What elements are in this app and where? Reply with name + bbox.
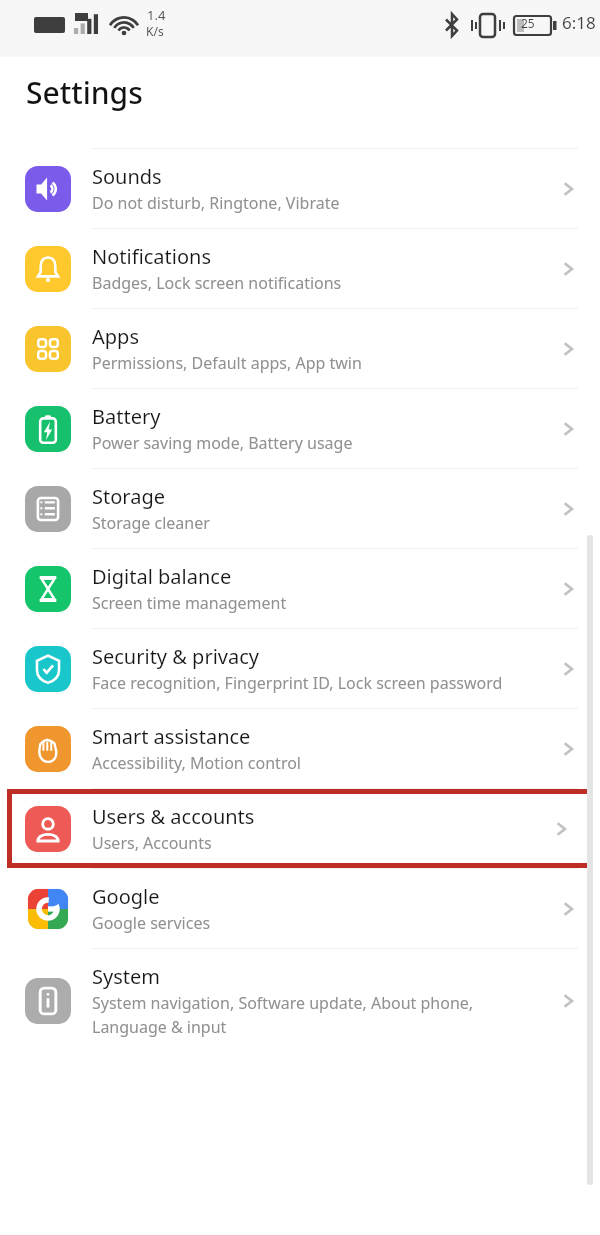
button[interactable]: Notifications: [0, 229, 600, 308]
button[interactable]: Apps: [0, 309, 600, 388]
button[interactable]: Sounds: [0, 149, 600, 228]
staticText: Apps: [92, 323, 139, 350]
staticText: Settings: [26, 72, 143, 113]
button[interactable]: Storage: [0, 469, 600, 548]
other: Open Digital balance: [556, 577, 580, 601]
other: Open Smart assistance: [556, 737, 580, 761]
other: Open Notifications: [556, 257, 580, 281]
staticText: Screen time management: [92, 592, 287, 614]
other: Open Sounds: [556, 177, 580, 201]
other: Open Google: [556, 897, 580, 921]
staticText: Power saving mode, Battery usage: [92, 432, 353, 454]
staticText: Notifications: [92, 243, 211, 270]
button[interactable]: System: [0, 949, 600, 1052]
staticText: Badges, Lock screen notifications: [92, 272, 342, 294]
other: Open Users & accounts: [549, 817, 573, 841]
other: Open System: [556, 989, 580, 1013]
button[interactable]: Digital balance: [0, 549, 600, 628]
staticText: 6:18: [562, 11, 596, 34]
staticText: Security & privacy: [92, 643, 259, 670]
staticText: Do not disturb, Ringtone, Vibrate: [92, 192, 340, 214]
button[interactable]: Users & accounts: [7, 789, 593, 868]
staticText: 1.4: [147, 6, 166, 24]
other: Open Storage: [556, 497, 580, 521]
staticText: Digital balance: [92, 563, 232, 590]
staticText: 25: [521, 15, 535, 31]
staticText: Permissions, Default apps, App twin: [92, 352, 362, 374]
staticText: Google services: [92, 912, 211, 934]
staticText: Storage: [92, 483, 165, 510]
button[interactable]: Battery: [0, 389, 600, 468]
button[interactable]: Google: [0, 869, 600, 948]
button[interactable]: Smart assistance: [0, 709, 600, 788]
button[interactable]: Security & privacy: [0, 629, 600, 708]
staticText: Accessibility, Motion control: [92, 752, 301, 774]
staticText: Storage cleaner: [92, 512, 210, 534]
staticText: Face recognition, Fingerprint ID, Lock s…: [92, 672, 503, 694]
other: Open Apps: [556, 337, 580, 361]
staticText: Battery: [92, 403, 161, 430]
staticText: Google: [92, 883, 160, 910]
staticText: Sounds: [92, 163, 162, 190]
staticText: System: [92, 963, 160, 990]
staticText: System navigation, Software update, Abou…: [92, 992, 546, 1038]
staticText: K/s: [146, 23, 164, 39]
other: Open Battery: [556, 417, 580, 441]
staticText: Users & accounts: [92, 803, 255, 830]
other: Open Security & privacy: [556, 657, 580, 681]
staticText: Smart assistance: [92, 723, 251, 750]
staticText: Users, Accounts: [92, 832, 212, 854]
